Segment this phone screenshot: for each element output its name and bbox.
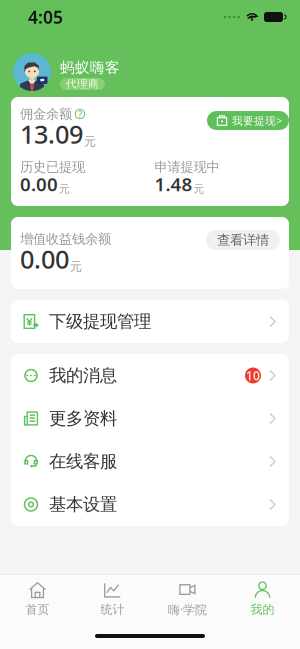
staticText: 蚂蚁嗨客	[60, 58, 120, 76]
staticText: 在线客服	[49, 451, 117, 472]
staticText: 元	[193, 182, 204, 195]
staticText: 基本设置	[49, 494, 117, 515]
button[interactable]: 在线客服	[11, 440, 289, 483]
staticText: 申请提现中	[154, 159, 219, 175]
staticText: 代理商	[66, 77, 99, 90]
staticText: 首页	[25, 602, 49, 617]
button[interactable]: 下级提现管理	[11, 300, 289, 343]
staticText: 更多资料	[49, 408, 117, 429]
button[interactable]: 我的	[225, 575, 300, 623]
staticText: 嗨·学院	[168, 601, 207, 617]
button[interactable]: 统计	[75, 575, 150, 623]
staticText: 元	[59, 182, 70, 195]
staticText: 4:05	[28, 5, 63, 28]
staticText: 我要提现>	[232, 113, 282, 128]
button[interactable]: 首页	[0, 575, 75, 623]
button[interactable]: 我的消息	[11, 354, 289, 397]
staticText: 历史已提现	[20, 159, 85, 175]
button[interactable]: 蚂蚁嗨客	[0, 34, 300, 97]
staticText: 10	[246, 367, 260, 383]
button[interactable]: 我要提现>	[207, 111, 289, 130]
button[interactable]: 更多资料	[11, 397, 289, 440]
staticText: 0.00	[20, 242, 69, 276]
staticText: 下级提现管理	[49, 311, 151, 332]
staticText: 1.48	[154, 172, 192, 196]
staticText: ?	[78, 108, 82, 120]
staticText: 佣金余额	[20, 106, 72, 122]
button[interactable]: 嗨·学院	[150, 575, 225, 623]
staticText: 元	[84, 134, 96, 149]
staticText: 查看详情	[217, 232, 269, 248]
staticText: 我的	[250, 602, 274, 617]
staticText: 增值收益钱余额	[20, 231, 111, 247]
staticText: 元	[70, 259, 82, 274]
staticText: 0.00	[20, 172, 58, 196]
staticText: 统计	[100, 602, 124, 617]
staticText: 我的消息	[49, 365, 117, 386]
button[interactable]: 查看详情	[206, 230, 280, 250]
staticText: 13.09	[20, 117, 83, 151]
button[interactable]: 基本设置	[11, 483, 289, 526]
